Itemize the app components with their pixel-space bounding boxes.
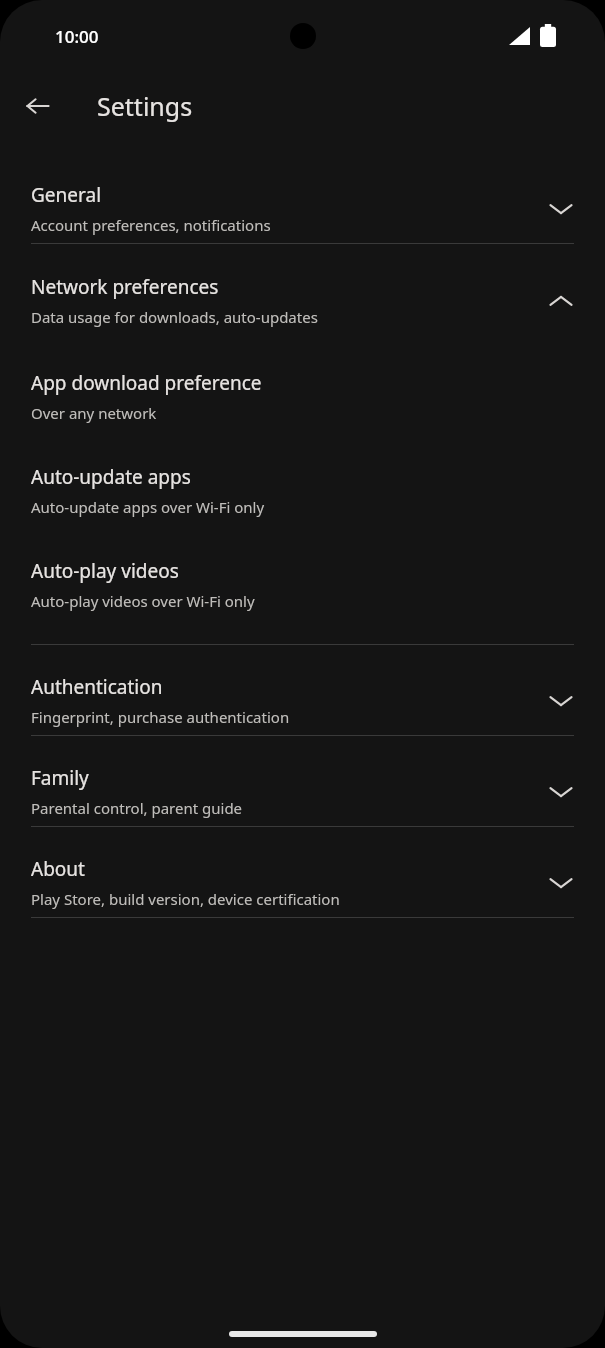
staticText: 10:00 [55, 25, 99, 48]
button[interactable]: Back [14, 82, 62, 130]
staticText: Authentication [31, 674, 163, 700]
staticText: Auto-play videos [31, 558, 179, 584]
staticText: Network preferences [31, 274, 219, 300]
button[interactable]: Family [0, 757, 605, 826]
staticText: Auto-update apps over Wi-Fi only [31, 497, 265, 517]
button[interactable]: General [0, 174, 605, 243]
staticText: Fingerprint, purchase authentication [31, 707, 290, 727]
staticText: Auto-update apps [31, 464, 191, 490]
staticText: Over any network [31, 403, 157, 423]
staticText: Parental control, parent guide [31, 798, 243, 818]
staticText: Family [31, 765, 89, 791]
staticText: App download preference [31, 370, 262, 396]
staticText: General [31, 182, 102, 208]
button[interactable]: Authentication [0, 666, 605, 735]
staticText: Play Store, build version, device certif… [31, 889, 340, 909]
staticText: Auto-play videos over Wi-Fi only [31, 591, 255, 611]
button[interactable]: Network preferences [0, 266, 605, 335]
staticText: Settings [97, 89, 193, 123]
button[interactable]: Auto-update apps [0, 460, 605, 521]
staticText: Account preferences, notifications [31, 215, 271, 235]
staticText: Data usage for downloads, auto-updates [31, 307, 318, 327]
button[interactable]: App download preference [0, 366, 605, 427]
staticText: About [31, 856, 85, 882]
button[interactable]: Auto-play videos [0, 554, 605, 615]
button[interactable]: About [0, 848, 605, 917]
